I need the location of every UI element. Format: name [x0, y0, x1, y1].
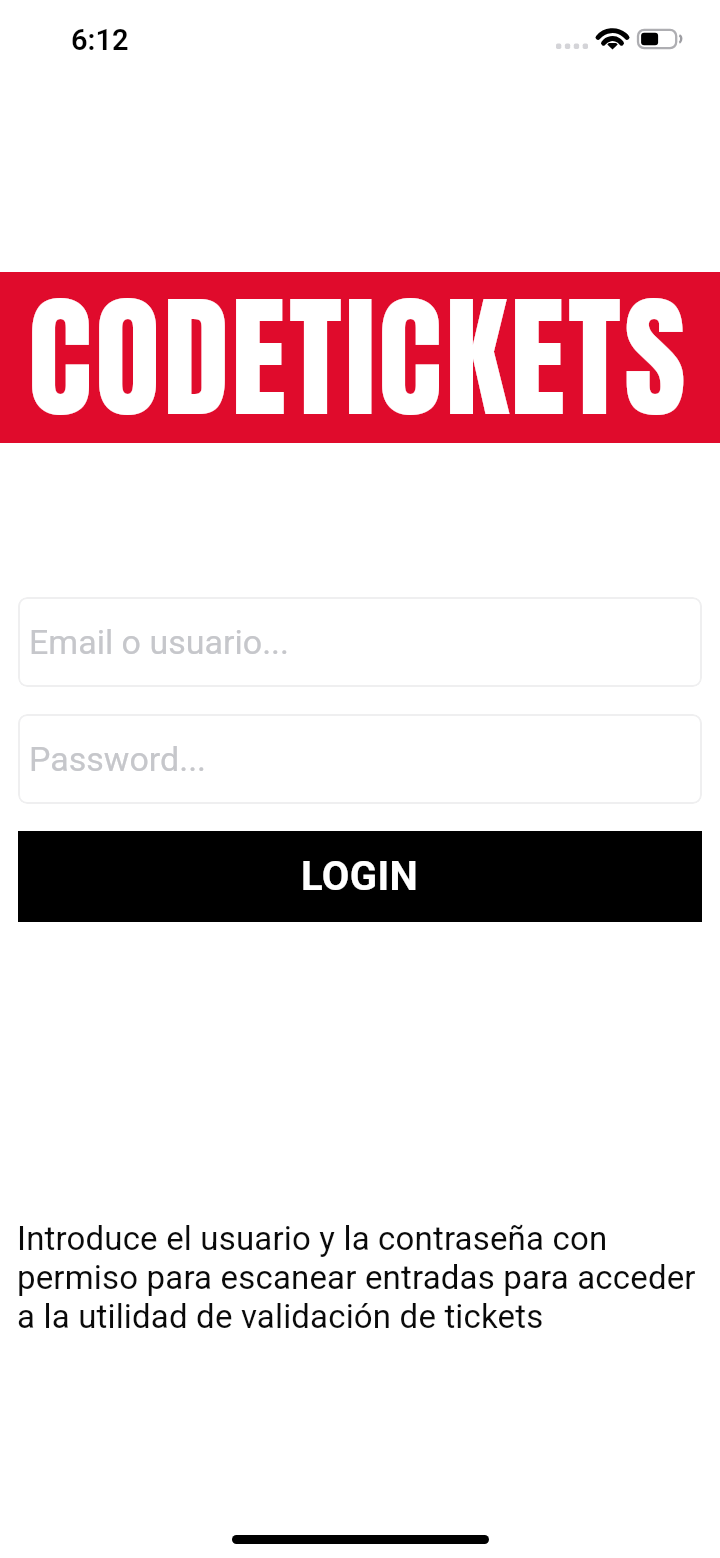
staticText: Password... [29, 739, 207, 779]
other: Battery [635, 27, 683, 52]
staticText: LOGIN [301, 853, 419, 900]
staticText: Introduce el usuario y la contraseña con… [17, 1219, 701, 1336]
button[interactable]: Password... [18, 714, 702, 804]
staticText: Email o usuario... [29, 622, 290, 662]
button[interactable]: Email o usuario... [18, 597, 702, 687]
other: Cellular signal [556, 42, 589, 50]
button[interactable]: LOGIN [18, 831, 702, 922]
staticText: 6:12 [71, 23, 129, 57]
other: CODETICKETS [0, 272, 720, 443]
other: Wi-Fi [596, 26, 629, 52]
